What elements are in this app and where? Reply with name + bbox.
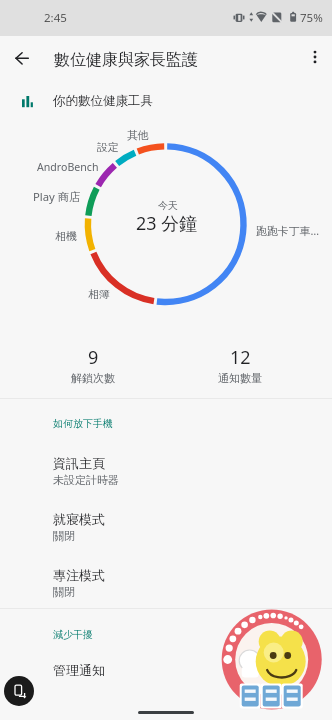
- staticText: 12: [230, 345, 251, 370]
- button[interactable]: 9: [37, 339, 149, 393]
- button[interactable]: More options: [301, 43, 329, 71]
- button[interactable]: Rotate screen: [4, 676, 34, 706]
- staticText: 就寢模式: [53, 511, 105, 527]
- button[interactable]: 就寢模式: [0, 501, 332, 547]
- button[interactable]: Back: [4, 40, 40, 76]
- staticText: 解鎖次數: [71, 371, 115, 385]
- staticText: 相機: [55, 230, 77, 244]
- staticText: 23 分鐘: [136, 211, 198, 236]
- staticText: 跑跑卡丁車…: [256, 223, 320, 238]
- staticText: 未設定計時器: [53, 473, 119, 487]
- staticText: 75%: [300, 10, 323, 26]
- staticText: 9: [88, 345, 99, 370]
- staticText: 設定: [97, 141, 119, 155]
- staticText: 其他: [127, 129, 149, 143]
- staticText: 2:45: [44, 10, 67, 26]
- staticText: 關閉: [53, 529, 75, 543]
- button[interactable]: 12: [184, 339, 296, 393]
- staticText: 你的數位健康工具: [53, 93, 153, 109]
- staticText: 資訊主頁: [53, 455, 105, 471]
- staticText: 通知數量: [218, 371, 262, 385]
- staticText: 如何放下手機: [53, 417, 113, 430]
- staticText: 數位健康與家長監護: [54, 50, 198, 70]
- staticText: 減少干擾: [53, 628, 93, 641]
- staticText: AndroBench: [37, 160, 99, 174]
- staticText: Play 商店: [33, 189, 81, 204]
- staticText: 關閉: [53, 585, 75, 599]
- button[interactable]: 管理通知: [0, 652, 332, 686]
- staticText: 相簿: [88, 288, 110, 302]
- staticText: 管理通知: [53, 662, 105, 678]
- button[interactable]: 專注模式: [0, 557, 332, 603]
- staticText: 專注模式: [53, 567, 105, 583]
- staticText: 今天: [158, 199, 178, 212]
- button[interactable]: 資訊主頁: [0, 445, 332, 491]
